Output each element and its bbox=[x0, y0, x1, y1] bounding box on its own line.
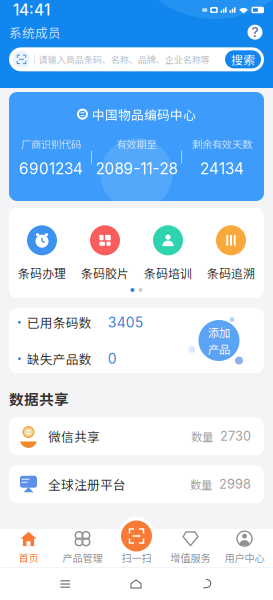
staticText: 3405 bbox=[108, 314, 144, 331]
staticText: 搜索 bbox=[231, 51, 255, 68]
button[interactable]: 条码胶片 bbox=[73, 227, 136, 280]
staticText: 已用条码数 bbox=[27, 313, 92, 331]
button[interactable]: 首页 bbox=[1, 529, 55, 567]
staticText: 全球注册平台 bbox=[48, 475, 126, 493]
button[interactable]: 全球注册平台 bbox=[9, 465, 264, 503]
staticText: 剩余有效天数 bbox=[192, 136, 252, 151]
staticText: 产品管理 bbox=[62, 550, 102, 565]
staticText: 条码培训 bbox=[144, 264, 192, 282]
button[interactable]: 帮助 bbox=[246, 23, 264, 41]
staticText: 数量 bbox=[191, 428, 213, 444]
staticText: 24134 bbox=[200, 159, 244, 178]
staticText: 条码办理 bbox=[18, 264, 66, 282]
button[interactable]: 添加 bbox=[188, 308, 250, 372]
button[interactable]: 微信共享 bbox=[9, 417, 264, 455]
button[interactable]: 条码办理 bbox=[10, 227, 73, 280]
staticText: 添加 bbox=[208, 324, 230, 340]
staticText: 中国物品编码中心 bbox=[92, 105, 196, 123]
staticText: 数量 bbox=[190, 476, 212, 492]
button[interactable]: 扫一扫 bbox=[109, 529, 163, 567]
button[interactable]: 用户中心 bbox=[217, 529, 271, 567]
staticText: 增值服务 bbox=[170, 550, 210, 565]
button[interactable]: 搜索 bbox=[225, 50, 261, 68]
button[interactable]: 条码追溯 bbox=[199, 227, 262, 280]
staticText: 请输入商品条码、名称、品牌、企业名称等 bbox=[39, 53, 210, 66]
staticText: 条码追溯 bbox=[207, 264, 255, 282]
staticText: 条码胶片 bbox=[81, 264, 129, 282]
staticText: ? bbox=[251, 24, 258, 40]
staticText: 缺失产品数 bbox=[27, 349, 92, 368]
button[interactable]: 条码培训 bbox=[136, 227, 199, 280]
staticText: 14:41 bbox=[13, 1, 50, 19]
staticText: 0 bbox=[108, 350, 117, 367]
staticText: 系统成员 bbox=[9, 23, 61, 41]
staticText: 6901234 bbox=[19, 159, 83, 178]
staticText: 数据共享 bbox=[9, 388, 69, 409]
staticText: 用户中心 bbox=[224, 550, 264, 565]
staticText: 有效期至 bbox=[116, 136, 156, 151]
staticText: 厂商识别代码 bbox=[21, 136, 81, 151]
staticText: 扫一扫 bbox=[121, 550, 151, 565]
button[interactable]: 扫一扫 bbox=[116, 516, 156, 556]
button[interactable]: 增值服务 bbox=[163, 529, 217, 567]
staticText: 首页 bbox=[18, 550, 38, 565]
staticText: 2730 bbox=[220, 429, 251, 444]
staticText: 产品 bbox=[208, 340, 230, 357]
button[interactable]: 产品管理 bbox=[55, 529, 109, 567]
staticText: 微信共享 bbox=[48, 427, 100, 445]
staticText: 2089-11-28 bbox=[95, 159, 177, 178]
staticText: 2998 bbox=[219, 477, 251, 492]
